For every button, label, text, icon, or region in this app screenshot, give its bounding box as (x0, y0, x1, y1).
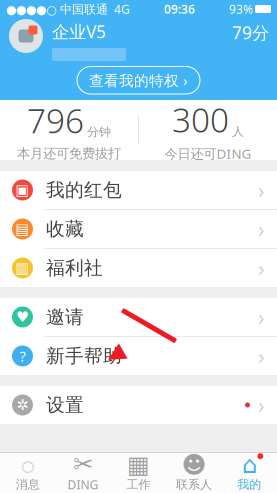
staticText: 分钟 (87, 125, 111, 139)
button[interactable]: ✲ (0, 386, 277, 424)
staticText: ●●●●○ 中国联通 4G (6, 1, 130, 17)
button[interactable]: ▥ (0, 249, 277, 287)
button[interactable]: ? (0, 337, 277, 375)
staticText: DING (68, 476, 99, 492)
staticText: ✂ (73, 450, 93, 478)
staticText: 新手帮助 (46, 344, 122, 367)
staticText: 联系人 (176, 477, 212, 492)
staticText: ▦ (127, 451, 150, 478)
button[interactable]: ▣ (0, 171, 277, 210)
staticText: › (258, 215, 265, 243)
staticText: 企业V5 (52, 20, 106, 43)
button[interactable]: ✂ (55, 453, 111, 493)
staticText: 本月还可免费拔打 (17, 145, 121, 162)
staticText: 福利社 (46, 256, 103, 279)
staticText: ? (19, 346, 25, 366)
staticText: 我的红包 (46, 178, 122, 201)
staticText: › (258, 176, 265, 204)
button[interactable]: ⌂ (222, 453, 277, 493)
button[interactable]: ♥ (0, 298, 277, 337)
button[interactable]: ▤ (0, 210, 277, 249)
staticText: 工作 (126, 477, 150, 492)
staticText: 300 (172, 97, 229, 142)
staticText: ☻ (181, 451, 206, 478)
staticText: ▣ (15, 182, 29, 198)
staticText: ◌ (21, 449, 35, 481)
button[interactable]: ◌ (0, 453, 55, 493)
button[interactable]: 查看我的特权 › (77, 66, 200, 94)
staticText: › (258, 254, 265, 282)
staticText: 查看我的特权 › (89, 70, 188, 90)
staticText: 人 (232, 124, 244, 139)
staticText: 邀请 (46, 305, 84, 328)
button[interactable]: ☻ (166, 453, 222, 493)
staticText: 设置 (46, 393, 84, 416)
staticText: 消息 (16, 477, 40, 492)
staticText: 09:36 (164, 1, 195, 17)
staticText: 收藏 (46, 217, 84, 240)
staticText: ⌂ (242, 451, 257, 478)
staticText: ▤ (15, 221, 29, 237)
staticText: ◀ (106, 341, 123, 367)
staticText: 796 (27, 98, 84, 142)
staticText: ✲ (16, 397, 28, 413)
staticText: ▥ (15, 260, 29, 276)
button[interactable]: 头像 (8, 18, 44, 54)
button[interactable]: ▦ (111, 453, 166, 493)
staticText: › (258, 342, 265, 370)
staticText: 93% (229, 1, 253, 17)
staticText: › (258, 303, 265, 331)
staticText: 79分 (232, 21, 269, 44)
staticText: 我的 (237, 477, 261, 492)
staticText: 今日还可DING (164, 145, 251, 162)
staticText: › (258, 391, 265, 419)
staticText: ♥ (16, 309, 29, 325)
